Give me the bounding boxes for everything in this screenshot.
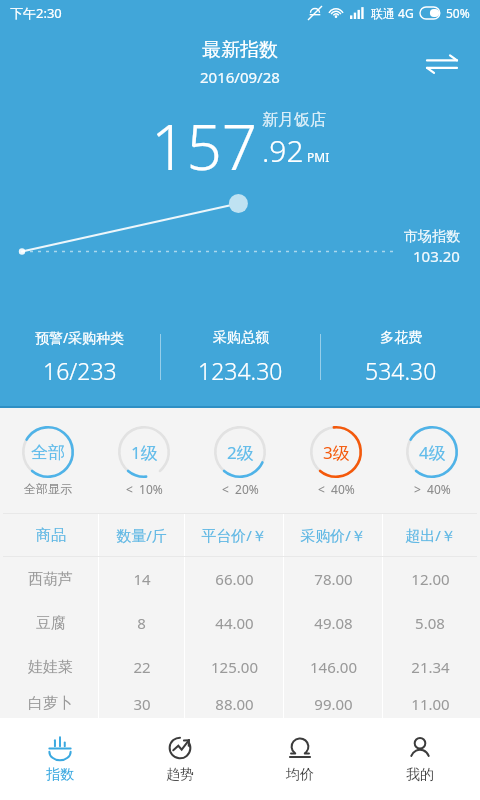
staticText: 78.00 [314, 569, 353, 589]
staticText: 44.00 [215, 613, 254, 633]
staticText: 30 [133, 694, 151, 714]
staticText: 白萝卜 [28, 694, 73, 713]
staticText: 14 [133, 569, 151, 589]
staticText: 商品 [36, 526, 66, 545]
staticText: 5.08 [415, 613, 445, 633]
button[interactable]: 娃娃菜 [3, 645, 477, 689]
staticText: PMI [307, 149, 330, 165]
staticText: 157 [151, 104, 258, 188]
staticText: > 40% [414, 481, 451, 497]
staticText: 2级 [227, 441, 254, 464]
staticText: < 20% [222, 481, 259, 497]
button[interactable]: 均价 [240, 718, 360, 800]
staticText: 娃娃菜 [28, 658, 73, 677]
button[interactable]: Switch [422, 44, 462, 84]
staticText: 趋势 [166, 766, 194, 784]
button[interactable]: 3级 [288, 408, 384, 513]
staticText: 采购总额 [213, 329, 269, 347]
button[interactable]: 预警/采购种类 [0, 328, 160, 386]
staticText: 均价 [286, 766, 314, 784]
button[interactable]: 白萝卜 [3, 689, 477, 718]
staticText: 市场指数 [404, 228, 460, 246]
staticText: 12.00 [411, 569, 450, 589]
button[interactable]: 我的 [360, 718, 480, 800]
staticText: 21.34 [411, 657, 450, 677]
staticText: 西葫芦 [28, 570, 73, 589]
staticText: 豆腐 [36, 614, 66, 633]
staticText: 2016/09/28 [200, 67, 280, 87]
staticText: 1234.30 [198, 355, 283, 386]
button[interactable]: 豆腐 [3, 601, 477, 645]
staticText: 11.00 [411, 694, 450, 714]
staticText: < 10% [126, 481, 163, 497]
staticText: 88.00 [215, 694, 254, 714]
staticText: 全部 [31, 442, 65, 463]
staticText: 全部显示 [24, 481, 72, 496]
button[interactable]: 4级 [384, 408, 480, 513]
staticText: 146.00 [310, 657, 357, 677]
staticText: 49.08 [314, 613, 353, 633]
button[interactable]: 多花费 [321, 329, 480, 386]
staticText: 超出/￥ [405, 525, 456, 545]
button[interactable]: 2级 [192, 408, 288, 513]
staticText: 最新指数 [202, 38, 278, 62]
staticText: 99.00 [314, 694, 353, 714]
staticText: 平台价/￥ [201, 525, 267, 545]
button[interactable]: 商品 [3, 514, 477, 556]
staticText: 534.30 [365, 355, 437, 386]
button[interactable]: 全部 [0, 408, 96, 513]
staticText: 103.20 [413, 246, 460, 266]
staticText: 16/233 [43, 355, 117, 386]
staticText: 3级 [323, 441, 350, 464]
button[interactable]: 指数 [0, 718, 120, 800]
staticText: 4级 [419, 441, 446, 464]
button[interactable]: 趋势 [120, 718, 240, 800]
staticText: 1级 [131, 441, 158, 464]
button[interactable]: 1级 [96, 408, 192, 513]
staticText: 采购价/￥ [300, 525, 366, 545]
staticText: 50% [446, 5, 470, 21]
staticText: 数量/斤 [116, 525, 167, 545]
staticText: < 40% [318, 481, 355, 497]
staticText: 预警/采购种类 [35, 328, 125, 347]
staticText: 指数 [46, 766, 74, 784]
button[interactable]: 西葫芦 [3, 557, 477, 601]
staticText: 联通 4G [371, 5, 414, 21]
staticText: .92 [262, 130, 304, 171]
staticText: 22 [133, 657, 151, 677]
staticText: 多花费 [380, 329, 422, 347]
staticText: 我的 [406, 766, 434, 784]
staticText: 8 [137, 613, 146, 633]
staticText: 新月饭店 [262, 110, 326, 130]
button[interactable]: 采购总额 [161, 329, 320, 386]
staticText: 125.00 [211, 657, 258, 677]
staticText: 下午2:30 [10, 4, 62, 22]
staticText: 66.00 [215, 569, 254, 589]
